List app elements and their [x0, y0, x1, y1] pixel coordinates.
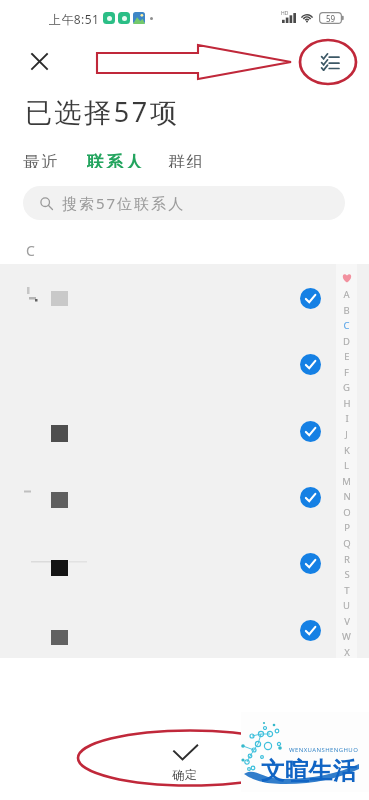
staticText: L: [344, 459, 349, 472]
button[interactable]: [0, 464, 369, 530]
button[interactable]: [0, 398, 369, 464]
staticText: X: [344, 646, 350, 659]
staticText: W: [342, 630, 351, 643]
button[interactable]: 群组: [164, 148, 210, 172]
staticText: H: [343, 397, 351, 410]
staticText: 搜索57位联系人: [62, 193, 186, 213]
staticText: U: [343, 599, 350, 612]
staticText: 文暄生活: [261, 756, 357, 786]
staticText: E: [344, 350, 350, 363]
staticText: 已选择57项: [25, 93, 180, 130]
staticText: D: [343, 335, 350, 348]
button[interactable]: 最近: [19, 148, 65, 172]
staticText: 最近: [23, 152, 61, 168]
staticText: F: [344, 366, 349, 379]
staticText: Q: [343, 537, 351, 550]
staticText: B: [343, 304, 350, 317]
staticText: N: [343, 490, 351, 503]
button[interactable]: [0, 530, 369, 596]
staticText: 上午8:51: [49, 11, 100, 27]
button[interactable]: [0, 597, 369, 663]
staticText: G: [343, 381, 350, 394]
staticText: J: [345, 428, 348, 441]
button[interactable]: Close: [22, 44, 56, 78]
staticText: I: [345, 412, 349, 425]
staticText: 确定: [172, 767, 198, 782]
staticText: R: [344, 553, 350, 566]
staticText: C: [26, 241, 35, 260]
button[interactable]: Select all: [311, 44, 347, 80]
button[interactable]: [0, 265, 369, 331]
staticText: 联系人: [87, 152, 145, 168]
staticText: C: [343, 319, 350, 332]
button[interactable]: 确定: [160, 745, 210, 782]
button[interactable]: [0, 331, 369, 397]
staticText: M: [342, 475, 351, 488]
staticText: WENXUANSHENGHUO: [289, 746, 359, 754]
button[interactable]: 搜索57位联系人: [23, 186, 345, 220]
staticText: HD: [281, 10, 289, 17]
staticText: A: [343, 288, 350, 301]
staticText: K: [344, 444, 350, 457]
staticText: V: [344, 615, 350, 628]
staticText: S: [344, 568, 350, 581]
button[interactable]: Alphabet index: [336, 264, 357, 658]
staticText: T: [344, 584, 350, 597]
button[interactable]: 联系人: [83, 148, 149, 172]
staticText: 59: [326, 13, 336, 24]
staticText: P: [344, 521, 350, 534]
staticText: O: [343, 506, 351, 519]
staticText: 群组: [168, 152, 206, 168]
